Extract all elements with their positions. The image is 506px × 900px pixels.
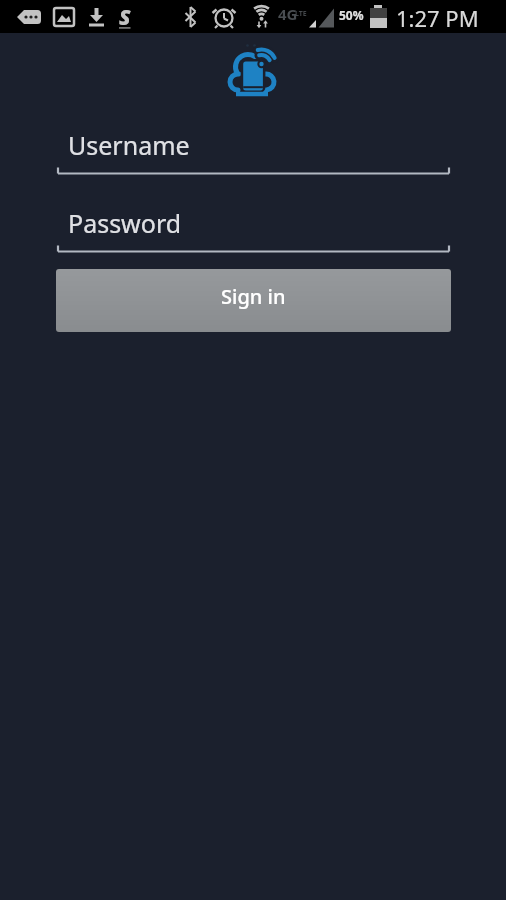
staticText: Sign in (221, 283, 286, 310)
staticText: Password (68, 206, 182, 240)
staticText: 1:27 PM (396, 3, 479, 33)
button[interactable]: Sign in (56, 269, 451, 332)
button[interactable] (56, 122, 450, 177)
staticText: S (119, 3, 131, 32)
staticText: 50% (339, 7, 364, 23)
staticText: LTE (295, 9, 307, 19)
staticText: Username (68, 128, 190, 162)
button[interactable] (56, 199, 450, 254)
staticText: 4G (278, 4, 298, 24)
